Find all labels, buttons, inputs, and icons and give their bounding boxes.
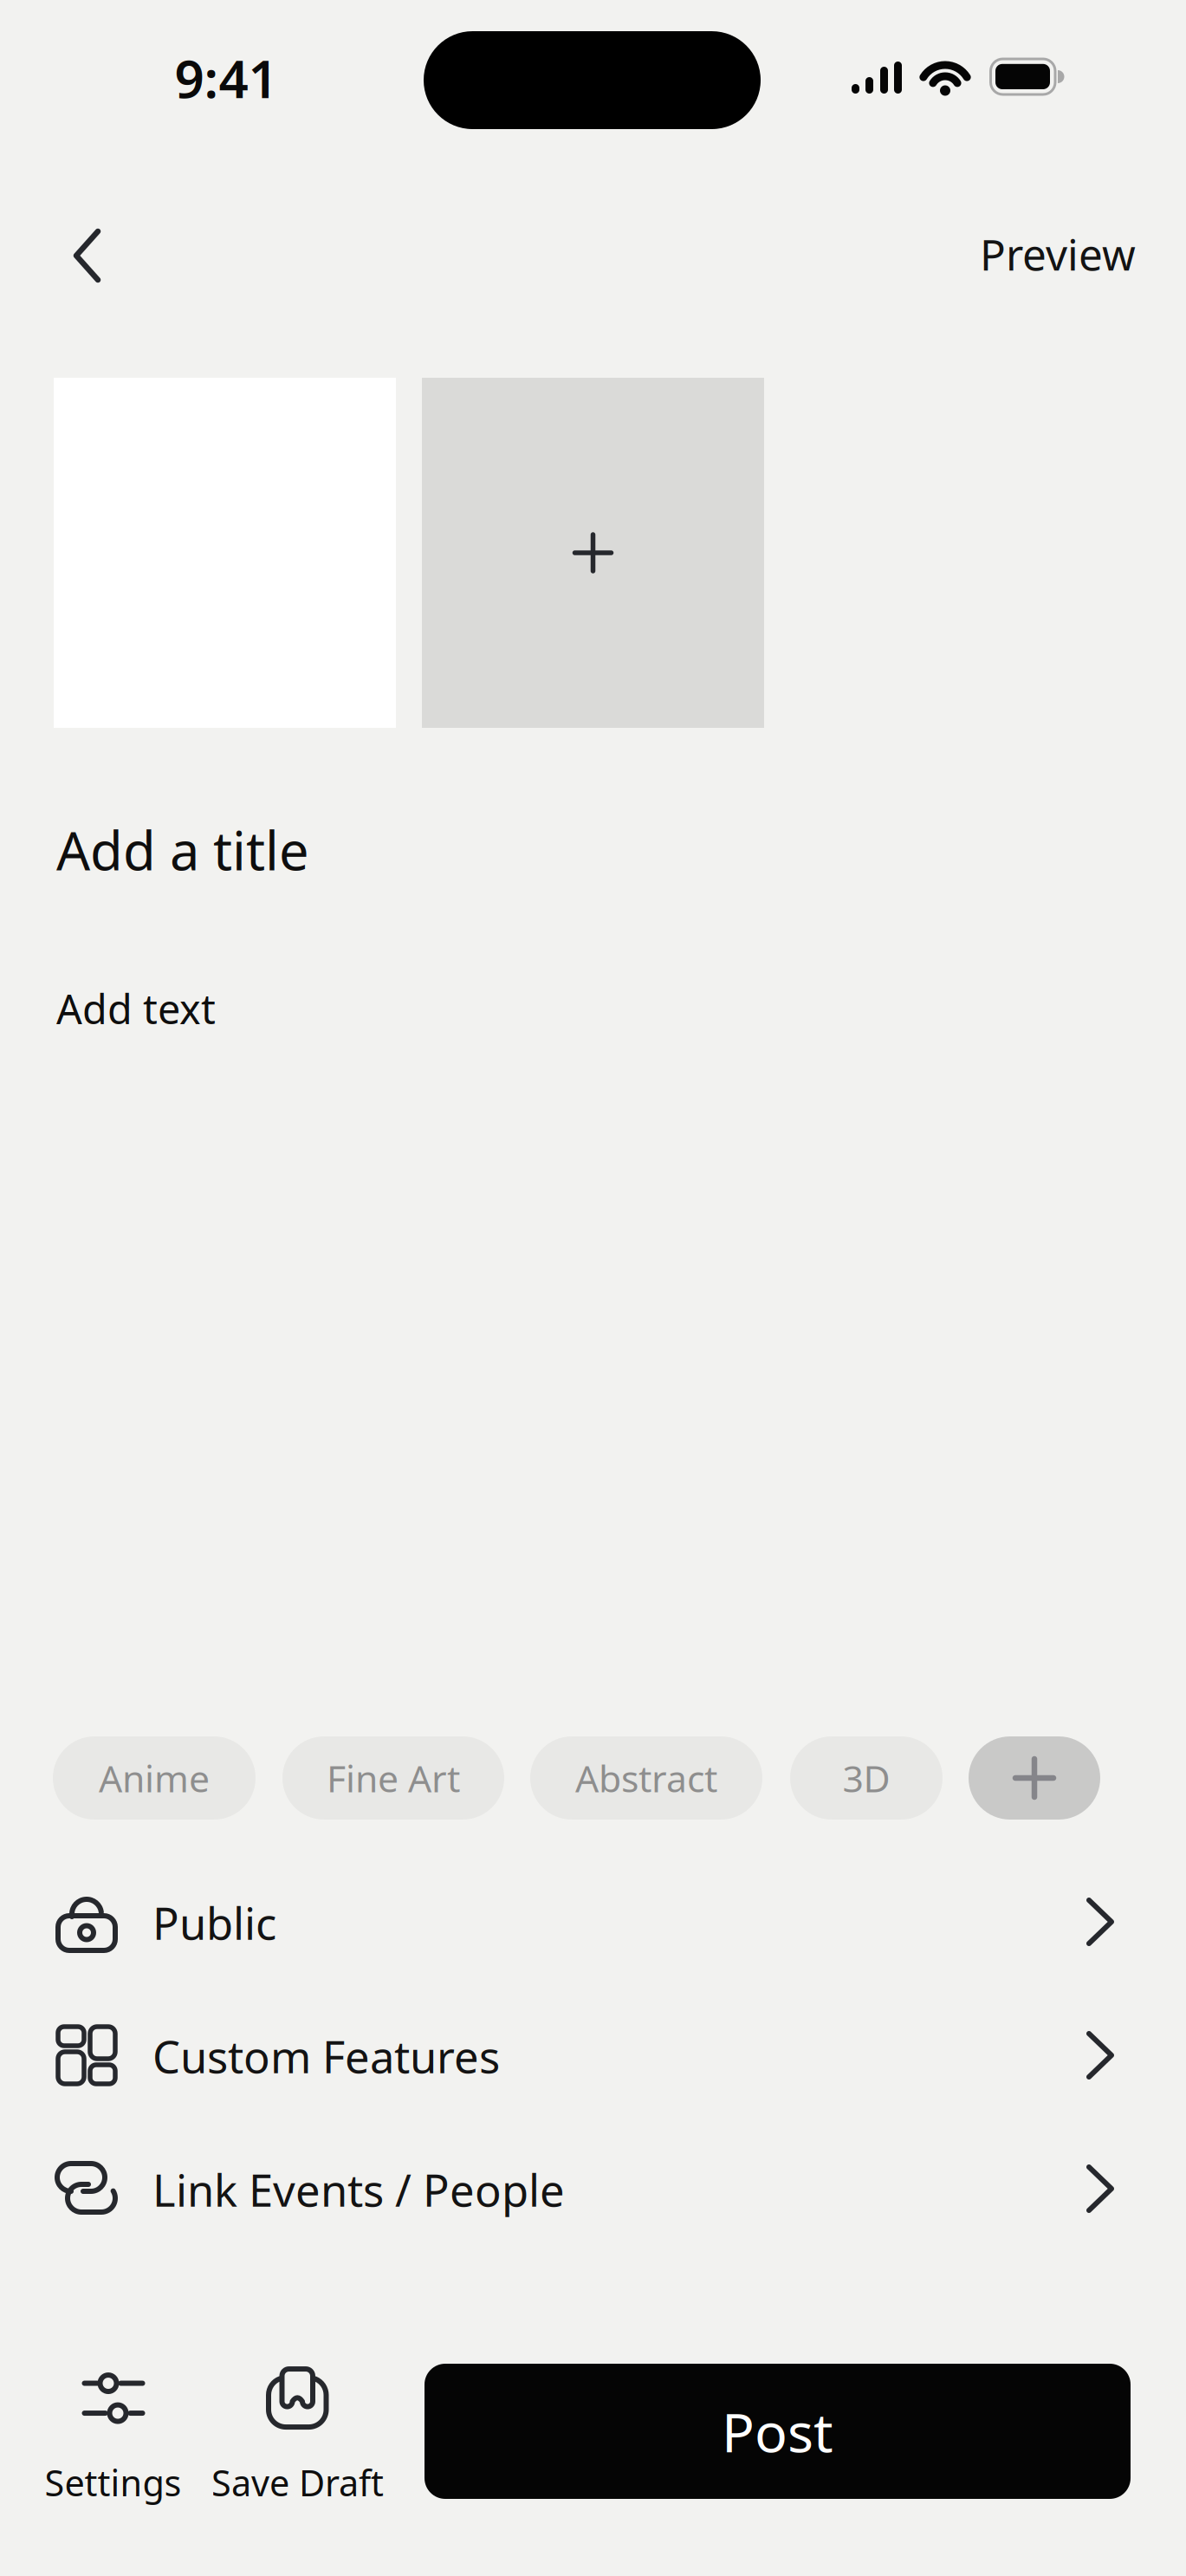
staticText: Add a title	[56, 814, 309, 885]
staticText: Save Draft	[211, 2459, 384, 2506]
button[interactable]: Public	[54, 1866, 1132, 1979]
staticText: Post	[722, 2395, 833, 2467]
button[interactable]: Post	[424, 2364, 1131, 2499]
staticText: Abstract	[575, 1753, 717, 1803]
button[interactable]: Abstract	[530, 1736, 762, 1820]
button[interactable]: Settings	[45, 2363, 181, 2506]
staticText: Custom Features	[152, 2027, 500, 2085]
button[interactable]: Add a title	[56, 814, 1135, 885]
staticText: 9:41	[175, 43, 278, 113]
button[interactable]: Back	[48, 217, 126, 295]
button[interactable]: Add image	[422, 378, 764, 728]
staticText: Link Events / People	[152, 2160, 565, 2219]
button[interactable]: Anime	[53, 1736, 256, 1820]
staticText: Add text	[56, 982, 216, 1035]
staticText: Settings	[45, 2459, 181, 2506]
staticText: Public	[152, 1894, 276, 1952]
button[interactable]: Add tag	[969, 1736, 1100, 1820]
button[interactable]: Save Draft	[211, 2363, 384, 2506]
button[interactable]: Link Events / People	[54, 2133, 1132, 2246]
staticText: Preview	[980, 225, 1136, 282]
button[interactable]: 3D	[790, 1736, 943, 1820]
button[interactable]: Add text	[56, 982, 1135, 1035]
staticText: Fine Art	[327, 1753, 460, 1803]
staticText: Anime	[99, 1753, 210, 1803]
staticText: 3D	[843, 1753, 890, 1803]
button[interactable]: Preview	[980, 225, 1136, 282]
button[interactable]: Fine Art	[282, 1736, 504, 1820]
button[interactable]: Custom Features	[54, 2000, 1132, 2112]
